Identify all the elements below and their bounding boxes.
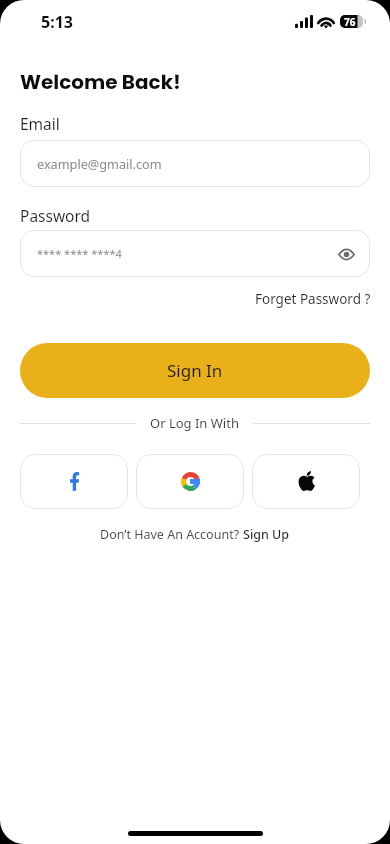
staticText: Don’t Have An Account? (100, 526, 243, 543)
staticText: example@gmail.com (37, 155, 162, 172)
button[interactable]: Sign in with Facebook (20, 454, 128, 509)
button[interactable]: Forget Password ? (255, 290, 371, 308)
staticText: Or Log In With (150, 414, 239, 432)
button[interactable]: Sign Up (243, 526, 290, 543)
button[interactable]: Sign in with Google (136, 454, 244, 509)
staticText: Email (20, 113, 60, 134)
button[interactable]: **** **** ****4 (20, 230, 370, 277)
button[interactable]: example@gmail.com (20, 140, 370, 187)
staticText: Password (20, 205, 91, 226)
staticText: 5:13 (41, 11, 73, 33)
staticText: **** **** ****4 (37, 246, 122, 261)
staticText: Sign In (167, 359, 223, 382)
staticText: Welcome Back! (20, 68, 181, 96)
button[interactable]: Show password (334, 242, 358, 266)
button[interactable]: Sign in with Apple (252, 454, 360, 509)
staticText: 76 (344, 15, 356, 28)
button[interactable]: Sign In (20, 343, 370, 398)
